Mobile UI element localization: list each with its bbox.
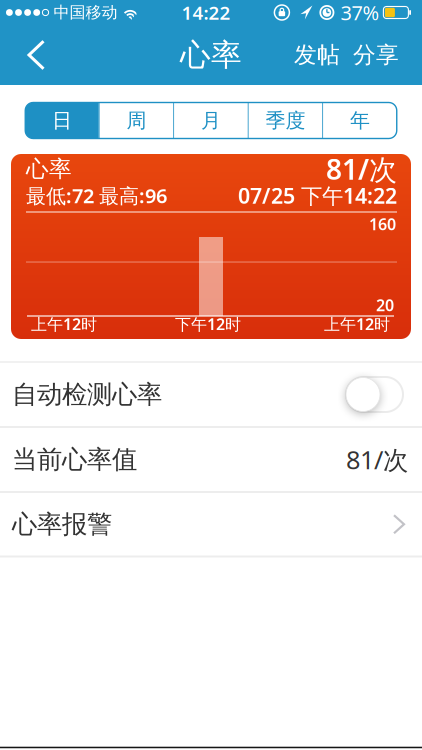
staticText: 81/次 [346,443,408,476]
button[interactable]: 季度 [249,102,322,138]
staticText: 14:22 [181,0,230,25]
staticText: 自动检测心率 [12,379,162,410]
staticText: 月 [201,108,221,133]
staticText: 发帖 [294,41,340,69]
staticText: 81/次 [326,150,397,188]
button[interactable]: 月 [174,102,248,138]
staticText: 07/25 下午14:22 [238,181,397,210]
staticText: 心率 [26,155,72,183]
staticText: 年 [350,108,370,133]
staticText: 心率报警 [12,509,112,540]
button[interactable]: 心率报警 [0,493,422,555]
button[interactable] [346,377,403,412]
staticText: 当前心率值 [12,444,137,475]
staticText: 季度 [265,108,305,133]
staticText: 160 [369,213,396,235]
staticText: 37% [340,0,379,26]
button[interactable] [0,25,55,85]
staticText: 日 [52,108,72,133]
staticText: 下午12时 [175,313,241,335]
staticText: 周 [126,108,146,133]
staticText: 上午12时 [31,313,97,335]
button[interactable]: 分享 [340,25,422,85]
staticText: 心率 [180,36,242,74]
staticText: 上午12时 [324,313,390,335]
staticText: 分享 [353,41,399,69]
button[interactable]: 日 [25,102,99,138]
button[interactable]: 年 [323,102,397,138]
button[interactable]: 发帖 [294,25,340,85]
staticText: 20 [376,294,394,316]
staticText: 最低:72 最高:96 [26,182,167,209]
staticText: 中国移动 [54,3,118,22]
button[interactable]: 周 [100,102,173,138]
